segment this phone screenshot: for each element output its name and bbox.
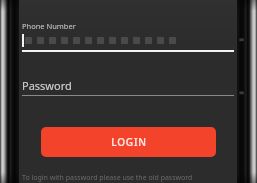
button[interactable]: Password [22, 78, 234, 96]
button[interactable]: To login with password please use the ol… [22, 173, 234, 183]
staticText: LOGIN [111, 135, 147, 149]
button[interactable]: LOGIN [41, 127, 216, 157]
other: Device frame [237, 0, 257, 183]
staticText: To login with password please use the ol… [22, 173, 193, 183]
staticText: Phone Number [22, 21, 76, 31]
staticText: Password [22, 78, 72, 93]
other: Device frame [0, 0, 19, 183]
button[interactable] [22, 33, 234, 52]
